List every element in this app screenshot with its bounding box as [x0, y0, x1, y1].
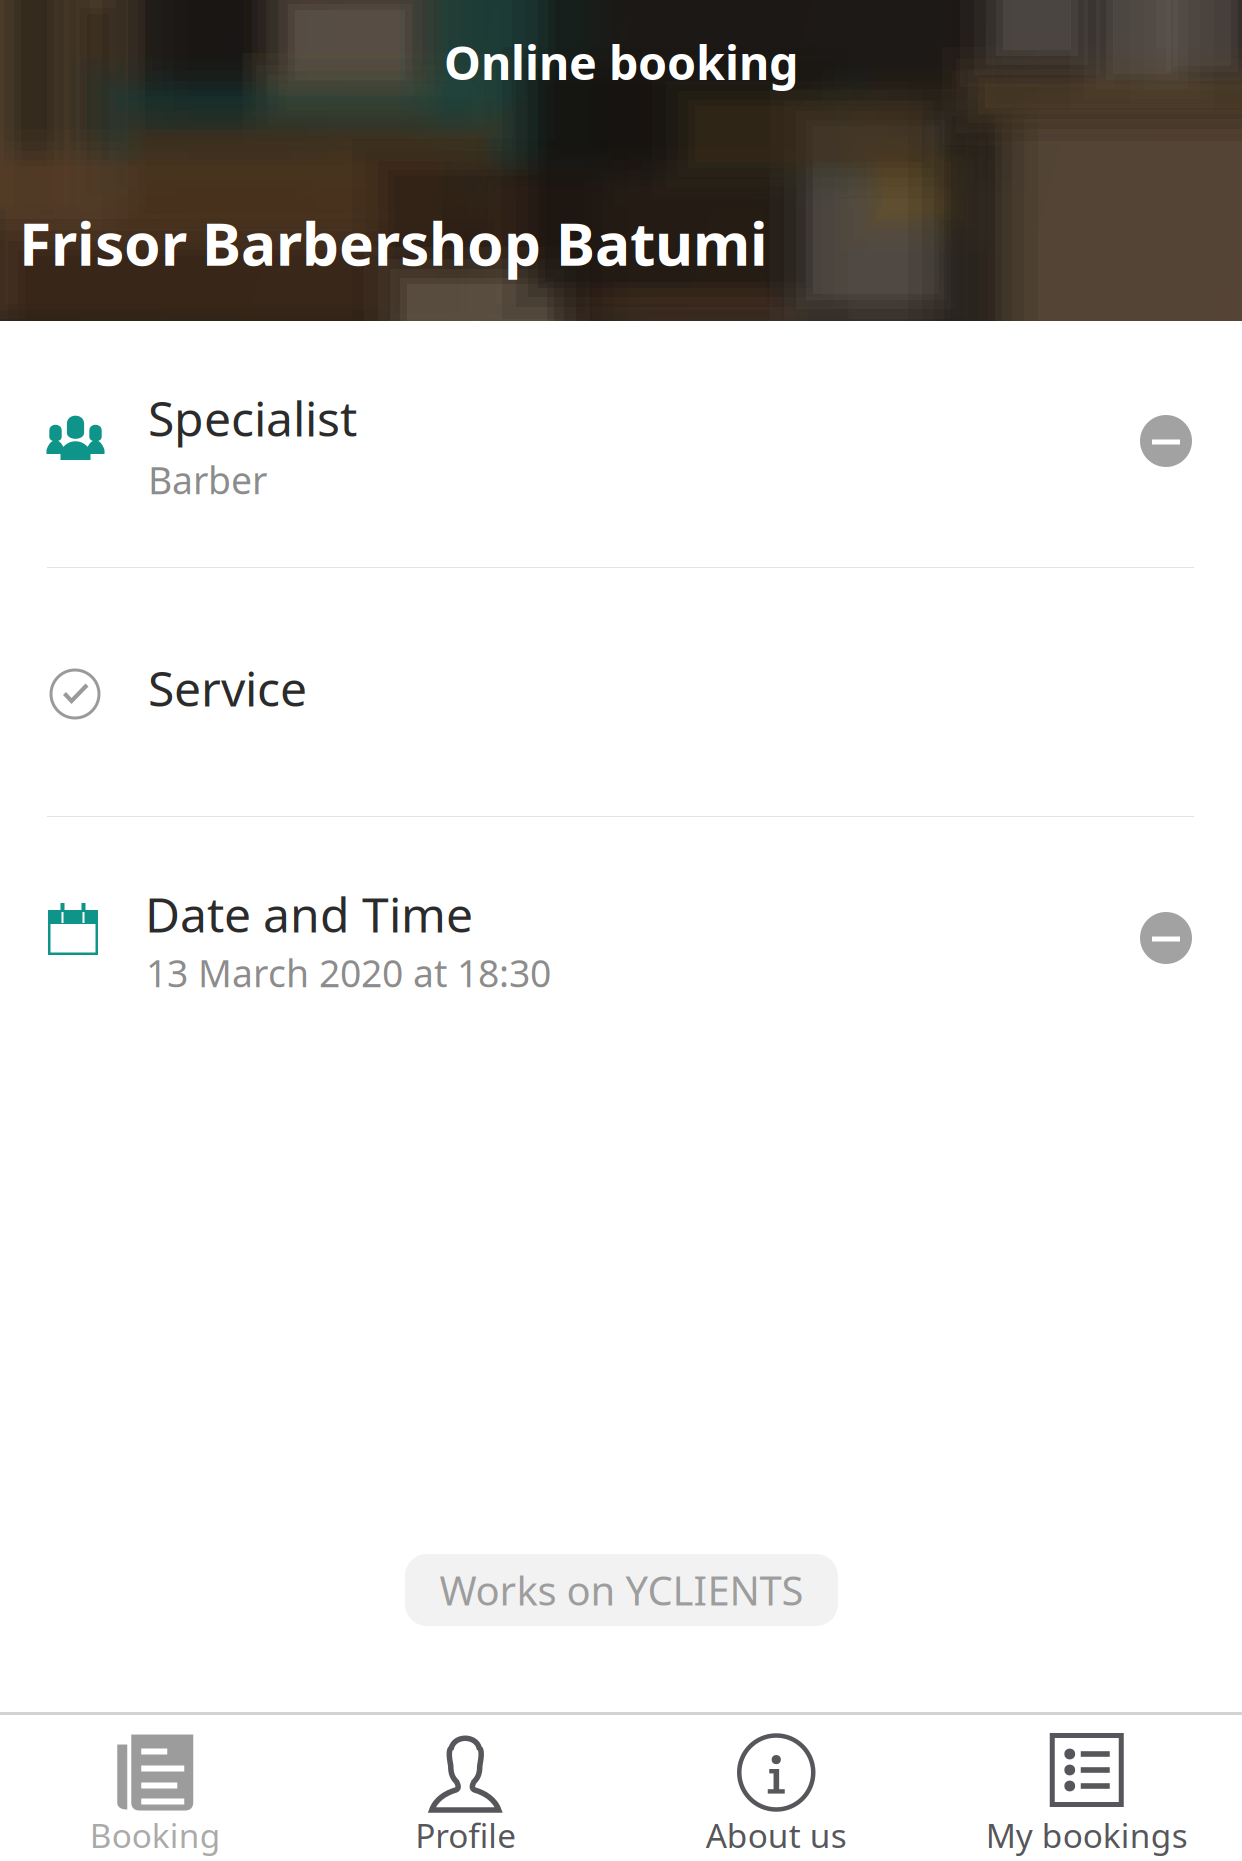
button[interactable]: Booking — [0, 1715, 310, 1861]
staticText: Frisor Barbershop Batumi — [19, 204, 768, 282]
button[interactable]: Service — [0, 568, 1242, 817]
button[interactable]: Clear date and time — [1130, 902, 1202, 974]
staticText: Specialist — [148, 386, 357, 450]
button[interactable]: Clear specialist — [1130, 405, 1202, 477]
staticText: Service — [148, 656, 307, 720]
staticText: 13 March 2020 at 18:30 — [146, 948, 551, 998]
staticText: My bookings — [986, 1813, 1188, 1857]
button[interactable]: Date and Time — [0, 817, 1242, 1040]
button[interactable]: About us — [621, 1715, 931, 1861]
staticText: Profile — [415, 1813, 516, 1857]
staticText: Online booking — [444, 31, 798, 93]
staticText: Date and Time — [145, 882, 473, 946]
staticText: Barber — [148, 455, 267, 505]
staticText: About us — [706, 1813, 847, 1857]
staticText: Booking — [90, 1813, 221, 1857]
button[interactable]: Specialist — [0, 321, 1242, 568]
button[interactable]: My bookings — [931, 1715, 1242, 1861]
staticText: Works on YCLIENTS — [439, 1563, 803, 1616]
button[interactable]: Profile — [310, 1715, 621, 1861]
